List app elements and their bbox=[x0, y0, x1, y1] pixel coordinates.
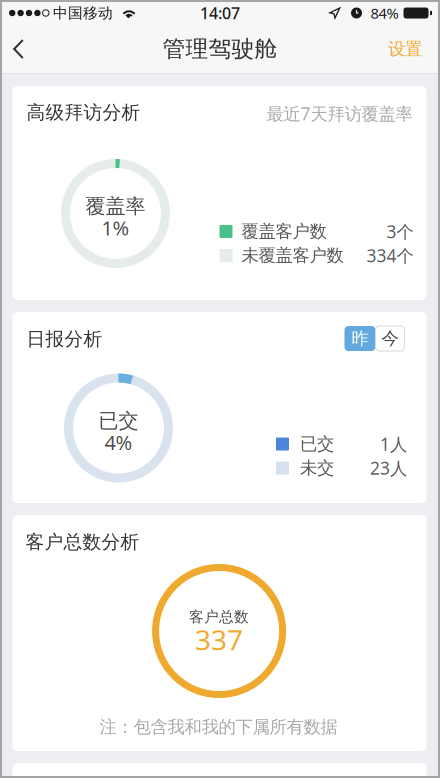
staticText: 管理驾驶舱 bbox=[162, 35, 277, 63]
staticText: 未交 bbox=[300, 457, 334, 479]
staticText: 1% bbox=[101, 214, 129, 241]
staticText: 覆盖客户数 bbox=[241, 221, 326, 242]
staticText: 客户总数 bbox=[189, 608, 249, 626]
staticText: 日报分析 bbox=[26, 327, 102, 350]
staticText: 今 bbox=[381, 328, 398, 349]
staticText: 337 bbox=[195, 621, 243, 658]
staticText: 23人 bbox=[370, 456, 407, 479]
button[interactable]: 昨 bbox=[344, 326, 375, 351]
staticText: 昨 bbox=[351, 328, 368, 349]
staticText: 最近7天拜访覆盖率 bbox=[266, 102, 412, 125]
button[interactable]: 今 bbox=[375, 326, 404, 351]
staticText: 1人 bbox=[380, 432, 407, 455]
staticText: 高级拜访分析 bbox=[26, 101, 140, 124]
staticText: 已交 bbox=[98, 408, 138, 433]
button[interactable]: 返回 bbox=[2, 25, 42, 73]
staticText: 未覆盖客户数 bbox=[241, 245, 343, 266]
staticText: 中国移动 bbox=[53, 4, 113, 22]
staticText: 设置 bbox=[388, 38, 422, 60]
staticText: 注：包含我和我的下属所有数据 bbox=[99, 716, 337, 738]
staticText: 覆盖率 bbox=[85, 194, 145, 218]
staticText: 14:07 bbox=[200, 2, 240, 24]
staticText: 已交 bbox=[300, 433, 334, 455]
staticText: 3个 bbox=[386, 220, 413, 243]
staticText: 334个 bbox=[366, 244, 413, 267]
staticText: 客户总数分析 bbox=[25, 530, 139, 553]
staticText: 84% bbox=[370, 3, 398, 23]
staticText: 4% bbox=[104, 429, 132, 456]
button[interactable]: 设置 bbox=[370, 22, 438, 76]
